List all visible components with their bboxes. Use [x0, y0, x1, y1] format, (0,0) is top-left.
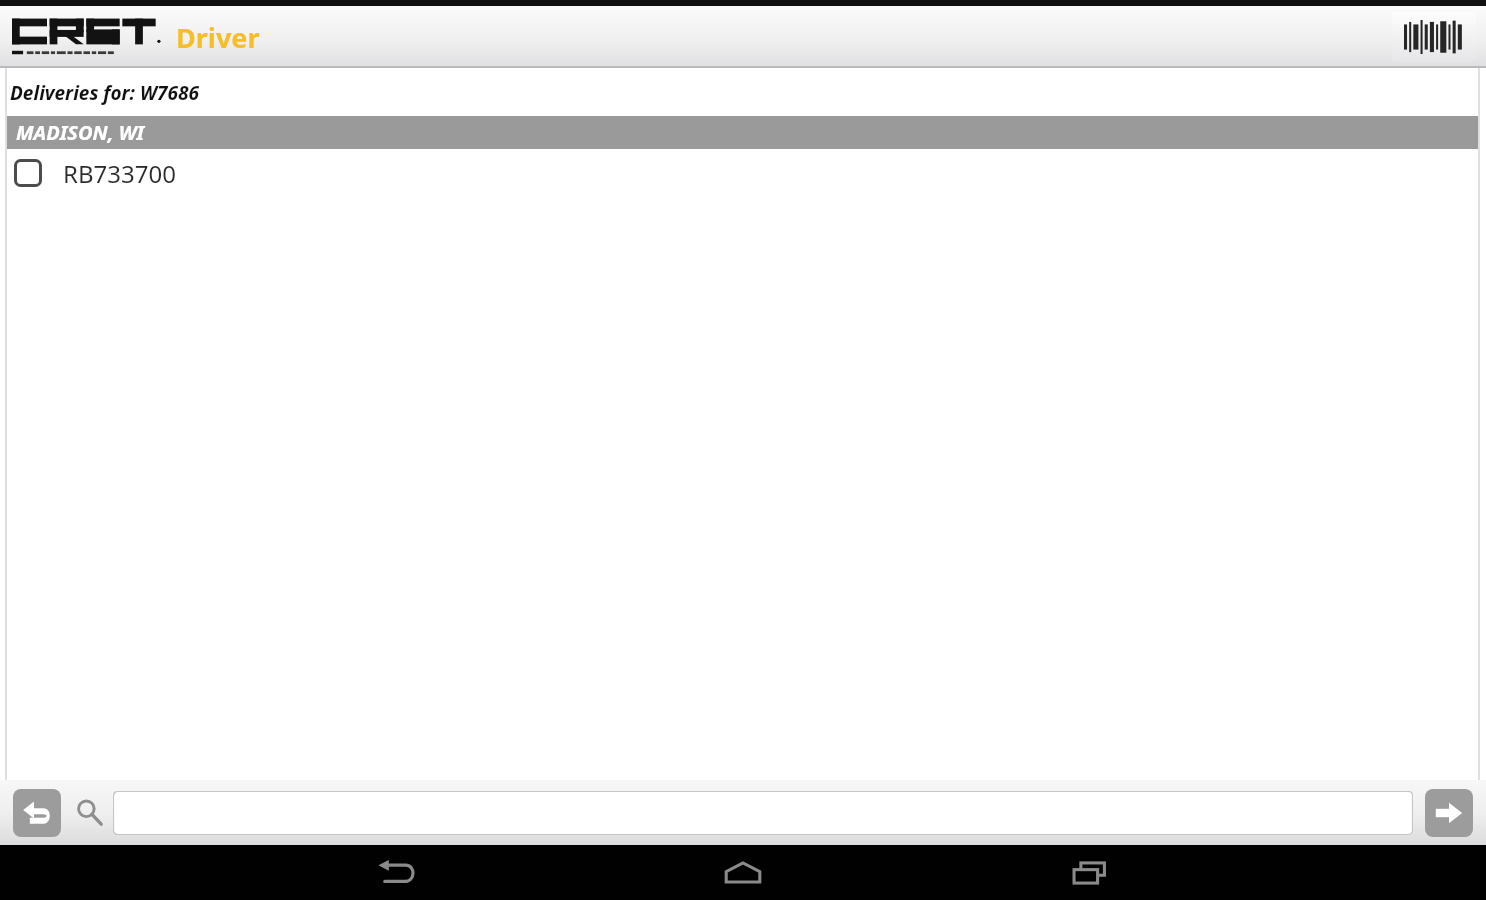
button[interactable]: MADISON, WI — [7, 116, 1478, 149]
button[interactable] — [113, 791, 1413, 835]
staticText: Deliveries for: W7686 — [10, 80, 199, 106]
button[interactable]: Search — [73, 796, 107, 830]
button[interactable]: Recent apps — [1047, 845, 1133, 900]
staticText: MADISON, WI — [16, 119, 145, 146]
button[interactable]: Driver — [176, 19, 260, 56]
staticText: RB733700 — [63, 157, 176, 190]
button[interactable]: Home — [700, 845, 786, 900]
button[interactable]: Next — [1425, 789, 1473, 837]
button[interactable]: RB733700 — [0, 149, 1486, 197]
button[interactable]: Scan barcode — [1392, 12, 1476, 62]
button[interactable]: Back — [13, 789, 61, 837]
button[interactable]: Back — [353, 845, 439, 900]
staticText: Driver — [176, 19, 260, 56]
